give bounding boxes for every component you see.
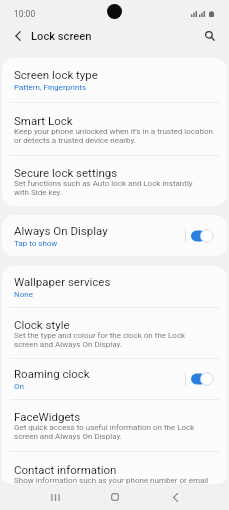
button[interactable]: Navigate up [5,23,31,49]
staticText: Roaming clock [14,367,90,380]
staticText: On [14,382,24,391]
staticText: FaceWidgets [14,410,81,423]
staticText: Keep your phone unlocked when it's in a … [14,127,213,145]
button[interactable]: Smart Lock [2,103,227,155]
button[interactable]: Secure lock settings [2,156,227,206]
staticText: Show information such as your phone numb… [14,476,209,484]
staticText: Wallpaper services [14,275,111,288]
staticText: 10:00 [14,9,36,19]
staticText: Smart Lock [14,114,73,127]
staticText: Set functions such as Auto lock and Lock… [14,179,193,197]
button[interactable]: Clock style [2,308,227,358]
button[interactable]: Contact information [2,452,227,484]
staticText: Pattern, Fingerprints [14,83,87,92]
staticText: Clock style [14,318,70,331]
staticText: Secure lock settings [14,166,118,179]
button[interactable]: Wallpaper services [2,266,227,307]
button[interactable]: Home [102,484,128,510]
staticText: Screen lock type [14,68,98,81]
button[interactable]: Search [198,24,222,48]
staticText: Always On Display [14,224,108,237]
button[interactable]: Screen lock type [2,58,227,102]
staticText: Contact information [14,463,117,476]
staticText: Tap to show [14,239,58,248]
button[interactable]: FaceWidgets [2,400,227,451]
button[interactable]: Recent apps [42,484,68,510]
staticText: None [14,290,33,299]
staticText: Get quick access to useful information o… [14,423,195,441]
staticText: Set the type and colour for the clock on… [14,331,186,349]
staticText: Lock screen [31,30,92,43]
button[interactable]: Always On Display [2,215,227,256]
button[interactable]: Toggle Roaming clock [191,372,214,386]
button[interactable]: Roaming clock [2,359,227,399]
button[interactable]: Back [162,484,188,510]
button[interactable]: Toggle Always On Display [191,229,214,243]
